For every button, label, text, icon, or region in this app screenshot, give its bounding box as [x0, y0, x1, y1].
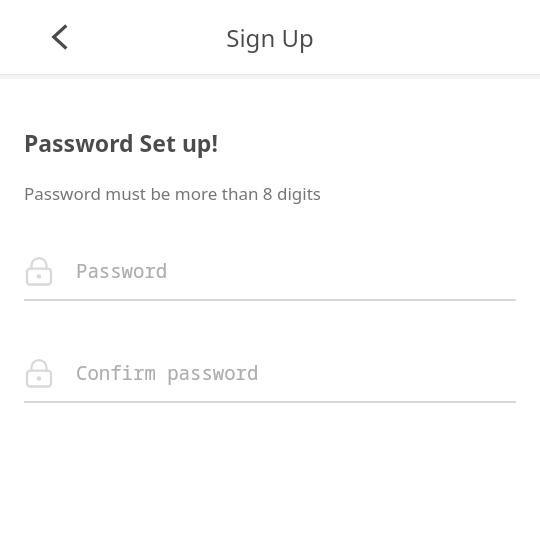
button[interactable]: Confirm password [0, 353, 540, 403]
staticText: Password must be more than 8 digits [24, 182, 321, 205]
staticText: Confirm password [76, 360, 259, 386]
button[interactable]: Password [0, 251, 540, 301]
staticText: Sign Up [0, 21, 540, 54]
button[interactable]: Back [34, 11, 86, 63]
staticText: Password Set up! [24, 127, 218, 158]
staticText: Password [76, 258, 168, 284]
